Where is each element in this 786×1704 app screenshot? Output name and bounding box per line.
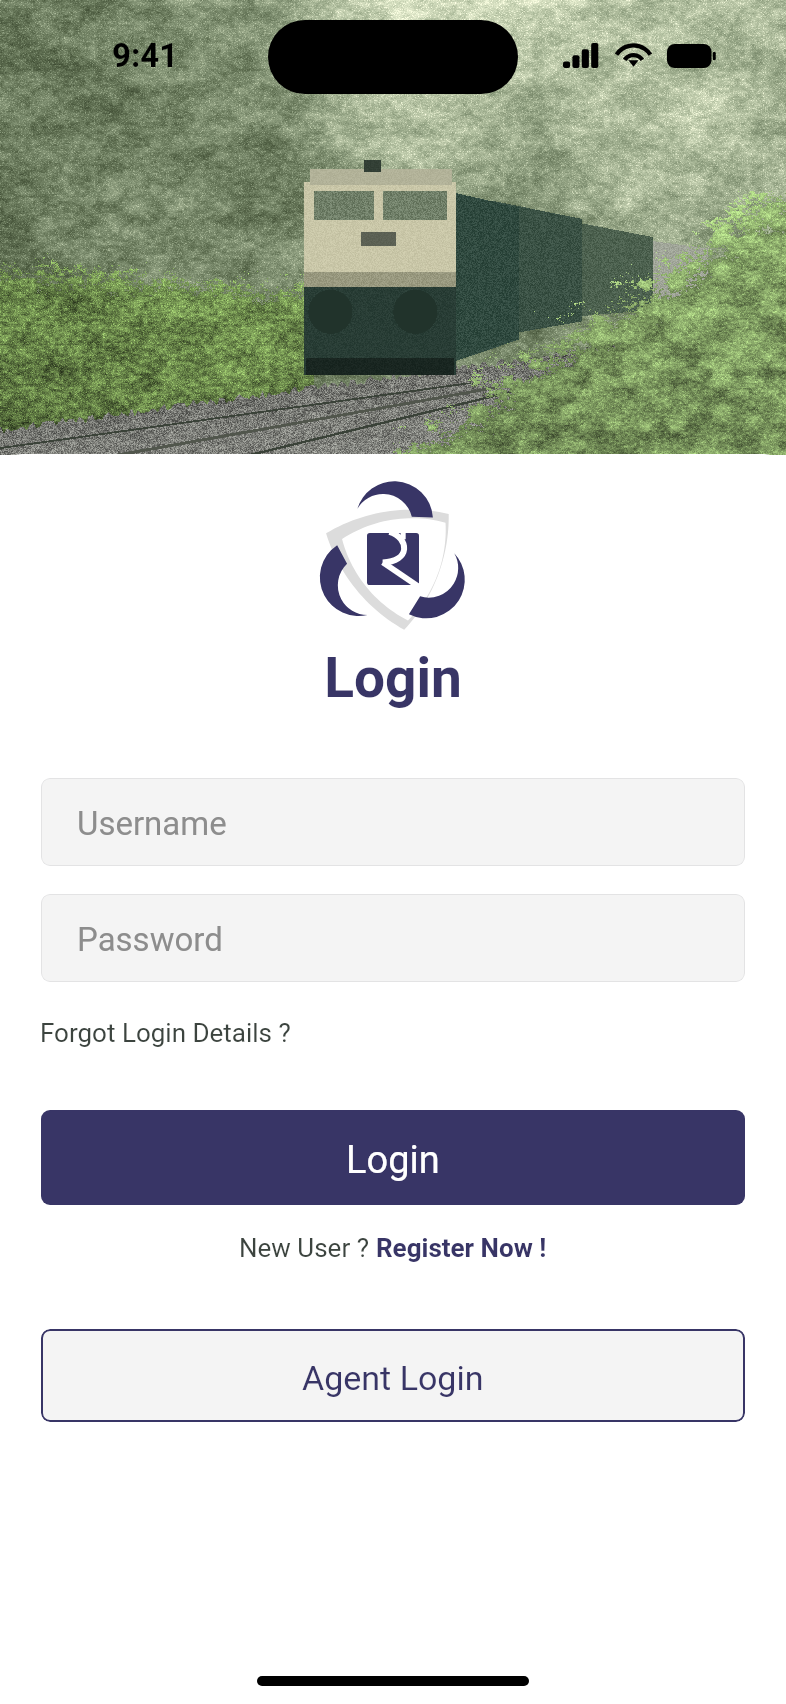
button[interactable]: Username bbox=[41, 778, 745, 866]
button[interactable]: Register Now ! bbox=[376, 1233, 547, 1263]
button[interactable]: Agent Login bbox=[41, 1329, 745, 1422]
staticText: 9:41 bbox=[112, 36, 179, 75]
other: Wi-Fi bbox=[616, 45, 651, 66]
button[interactable]: Password bbox=[41, 894, 745, 982]
button[interactable]: Forgot Login Details ? bbox=[40, 1018, 291, 1048]
staticText: Agent Login bbox=[302, 1358, 484, 1398]
staticText: Login bbox=[346, 1138, 440, 1183]
staticText: Password bbox=[77, 920, 223, 959]
other: Battery bbox=[667, 44, 717, 68]
staticText: Login bbox=[0, 646, 786, 710]
other: Cellular signal bbox=[563, 43, 600, 68]
staticText: Username bbox=[77, 804, 227, 843]
button[interactable]: Login bbox=[41, 1110, 745, 1205]
staticText: New User ? bbox=[239, 1233, 376, 1263]
